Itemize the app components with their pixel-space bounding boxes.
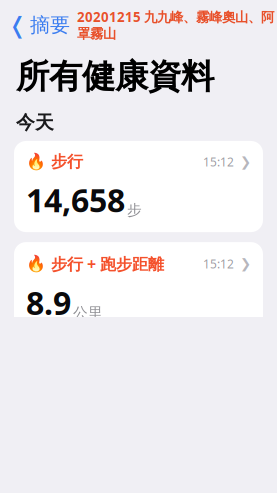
button[interactable]: ❬ <box>0 8 70 42</box>
button[interactable]: 🔥 <box>14 242 263 335</box>
staticText: 所有健康資料 <box>16 56 214 97</box>
button[interactable]: 🔥 <box>14 141 263 232</box>
staticText: 公里 <box>73 304 103 322</box>
staticText: ❯ <box>240 256 251 271</box>
staticText: ❯ <box>240 154 251 169</box>
staticText: ❬ <box>8 12 27 38</box>
staticText: 15:12 <box>203 154 234 170</box>
staticText: 20201215 九九峰、霧峰奧山、阿罩霧山 <box>77 8 274 42</box>
staticText: 步 <box>127 201 142 219</box>
staticText: 摘要 <box>30 13 70 37</box>
staticText: 🔥 <box>26 153 46 171</box>
staticText: 今天 <box>16 111 54 134</box>
staticText: 14,658 <box>26 179 125 221</box>
staticText: 步行 + 跑步距離 <box>46 253 164 274</box>
staticText: 8.9 <box>26 281 71 324</box>
staticText: 步行 <box>46 152 83 172</box>
staticText: 🔥 <box>26 255 46 273</box>
staticText: 15:12 <box>203 256 234 272</box>
